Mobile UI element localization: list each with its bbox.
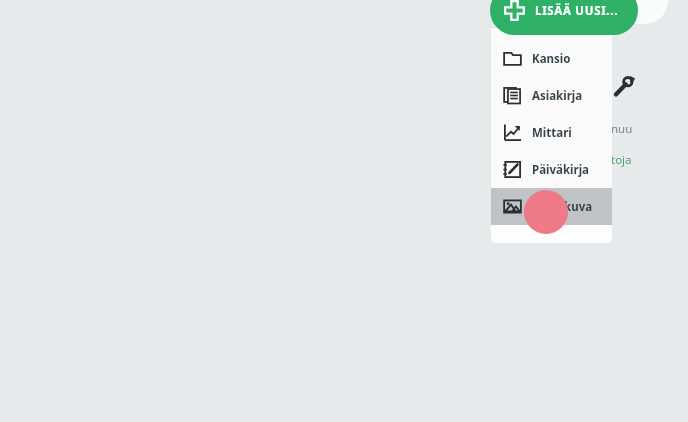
button[interactable]: Päiväkirja: [491, 151, 612, 188]
other: Settings: [612, 76, 634, 98]
staticText: nuu: [611, 121, 633, 137]
button[interactable]: Mittari: [491, 114, 612, 151]
staticText: toja: [611, 152, 632, 168]
staticText: Mittari: [532, 125, 572, 141]
button[interactable]: LISÄÄ UUSI...: [490, 0, 638, 35]
staticText: Asiakirja: [532, 88, 583, 104]
button[interactable]: Pohjakuva: [491, 188, 612, 225]
staticText: LISÄÄ UUSI...: [535, 3, 619, 19]
staticText: Päiväkirja: [532, 162, 589, 178]
button[interactable]: Asiakirja: [491, 77, 612, 114]
staticText: Kansio: [532, 51, 571, 67]
staticText: Pohjakuva: [532, 199, 593, 215]
button[interactable]: Kansio: [491, 40, 612, 77]
